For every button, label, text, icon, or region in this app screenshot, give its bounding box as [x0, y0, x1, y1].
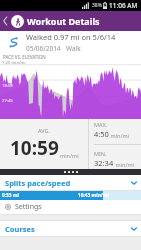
- staticText: Walked 0.97 mi on 5/6/14: [26, 32, 116, 42]
- staticText: min/mi: [109, 132, 129, 139]
- staticText: Courses: [5, 224, 127, 234]
- staticText: MIN.: [94, 150, 107, 157]
- staticText: Walk: [66, 44, 81, 53]
- button[interactable]: Splits pace/speed: [0, 175, 141, 190]
- staticText: min/mi: [60, 152, 79, 159]
- button[interactable]: Settings: [0, 200, 141, 214]
- staticText: AVG.: [38, 127, 51, 134]
- staticText: MAX.: [94, 121, 108, 128]
- staticText: 0:55 mi: [2, 192, 19, 199]
- staticText: Workout Details: [27, 15, 100, 27]
- staticText: min/mi: [114, 161, 134, 168]
- button[interactable]: Drag handle: [0, 169, 141, 175]
- staticText: 05/06/2014: [26, 44, 61, 53]
- button[interactable]: 0:55 mi: [0, 191, 141, 200]
- staticText: 10:59: [10, 135, 59, 161]
- staticText: 38%: [92, 2, 102, 9]
- button[interactable]: Courses: [0, 221, 141, 236]
- staticText: 18:59: [2, 83, 13, 89]
- button[interactable]: Back: [0, 11, 11, 31]
- staticText: 10:43 min/mi: [78, 192, 109, 199]
- staticText: 11:06 AM: [109, 1, 138, 10]
- staticText: Splits pace/speed: [5, 178, 127, 188]
- staticText: Settings: [15, 202, 42, 212]
- staticText: 4:50: [94, 129, 109, 139]
- button[interactable]: Walked 0.97 mi on 5/6/14: [0, 31, 141, 53]
- staticText: PACE VS. ELEVATION: [3, 54, 46, 60]
- staticText: 27:45: [2, 98, 13, 104]
- staticText: 1:20 min/mi: [2, 60, 26, 66]
- staticText: 32:34: [94, 158, 114, 168]
